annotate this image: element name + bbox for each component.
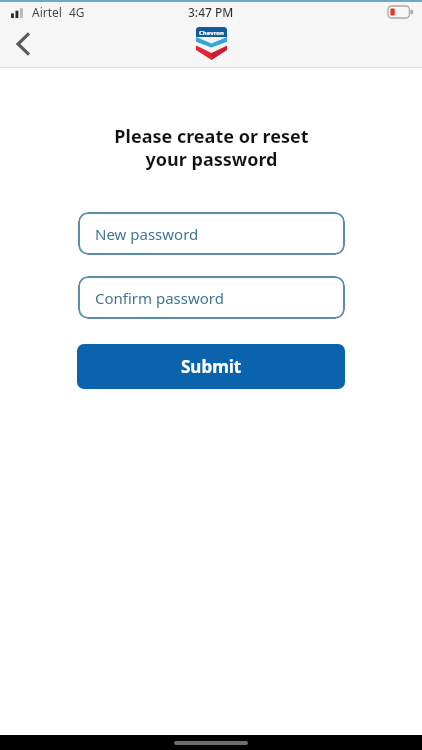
staticText: New password <box>95 224 199 244</box>
staticText: Confirm password <box>95 288 224 308</box>
staticText: Chevron <box>199 29 224 37</box>
button[interactable]: New password <box>78 212 345 255</box>
staticText: 3:47 PM <box>188 4 234 20</box>
button[interactable]: Confirm password <box>78 276 345 319</box>
button[interactable]: Back <box>0 21 46 67</box>
staticText: Airtel <box>32 4 62 20</box>
button[interactable]: Submit <box>77 344 345 389</box>
staticText: 4G <box>69 4 85 20</box>
staticText: Submit <box>181 355 242 378</box>
staticText: Please create or reset your password <box>114 124 309 171</box>
button[interactable]: Chevron logo <box>196 27 227 60</box>
